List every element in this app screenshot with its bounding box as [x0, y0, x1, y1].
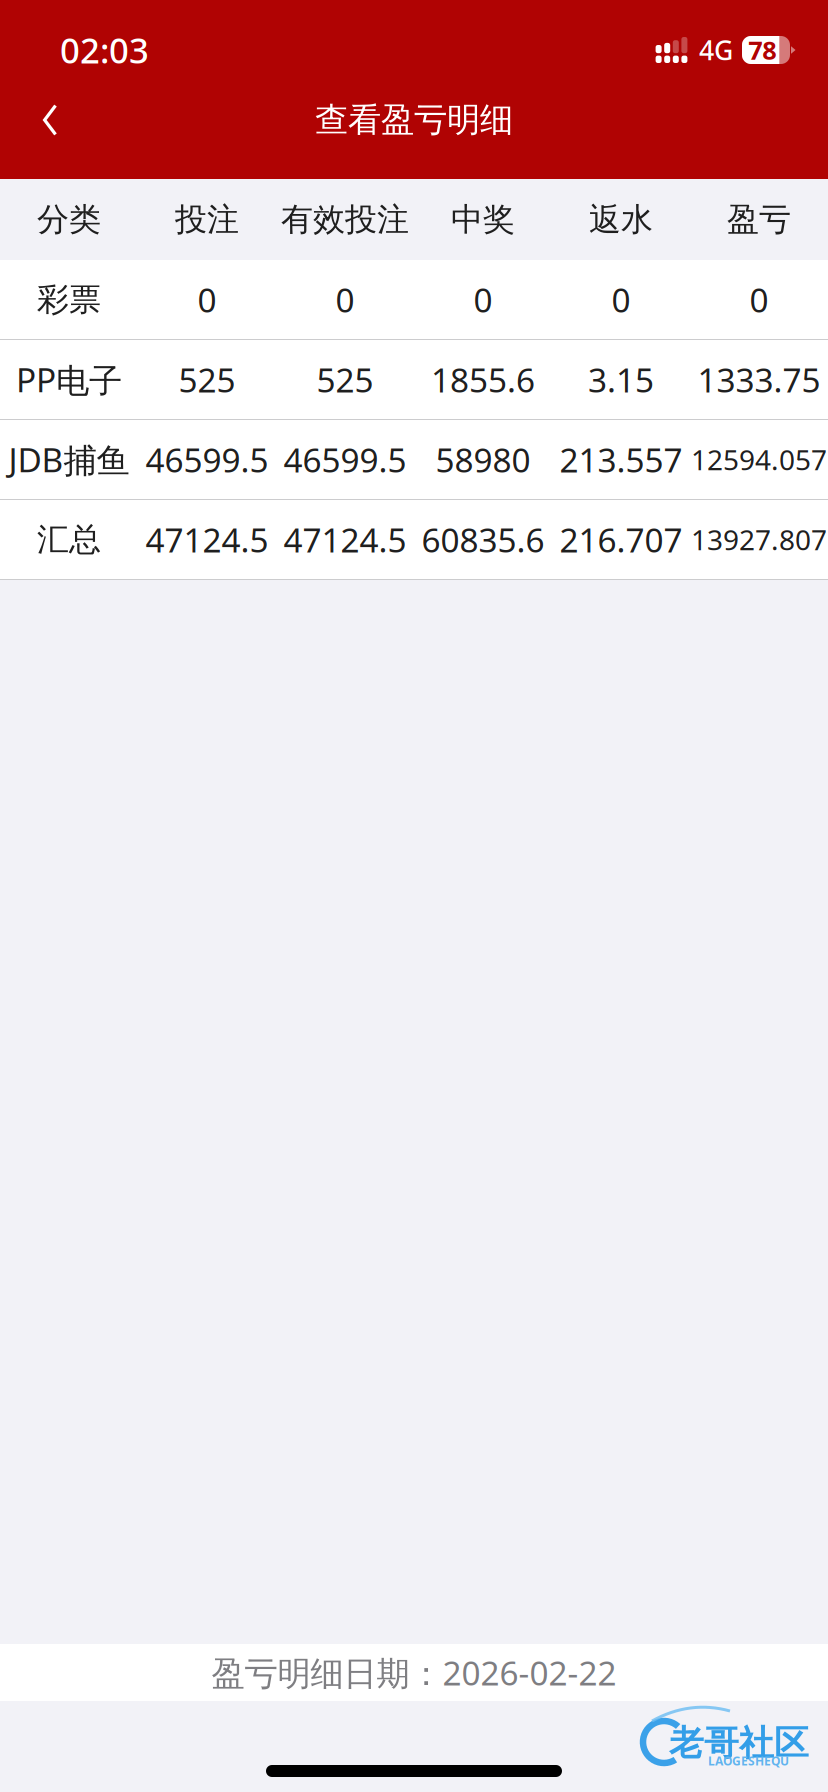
staticText: 返水	[589, 200, 653, 239]
staticText: 0	[197, 277, 216, 322]
staticText: 盈亏明细日期：2026-02-22	[211, 1650, 616, 1695]
staticText: 盈亏	[727, 200, 791, 239]
staticText: 3.15	[588, 357, 654, 402]
staticText: 查看盈亏明细	[315, 99, 513, 140]
staticText: 13927.807	[691, 521, 827, 558]
staticText: 78	[748, 33, 776, 67]
staticText: 4G	[699, 32, 733, 68]
button[interactable]: Back	[0, 79, 120, 161]
staticText: 02:03	[60, 27, 149, 73]
staticText: 58980	[435, 437, 530, 482]
staticText: JDB捕鱼	[8, 437, 129, 482]
staticText: 彩票	[37, 280, 101, 319]
staticText: 老哥社区	[669, 1722, 809, 1765]
staticText: 0	[611, 277, 630, 322]
staticText: 47124.5	[145, 517, 268, 562]
staticText: 47124.5	[283, 517, 406, 562]
staticText: 1855.6	[431, 357, 535, 402]
staticText: 0	[335, 277, 354, 322]
staticText: 分类	[37, 200, 101, 239]
staticText: 213.557	[559, 437, 682, 482]
staticText: LAOGESHEQU	[708, 1753, 789, 1769]
staticText: 0	[473, 277, 492, 322]
staticText: 12594.057	[691, 441, 827, 478]
staticText: 中奖	[451, 200, 515, 239]
staticText: PP电子	[16, 357, 122, 402]
staticText: 46599.5	[145, 437, 268, 482]
staticText: 525	[178, 357, 235, 402]
staticText: 525	[316, 357, 373, 402]
staticText: 有效投注	[281, 200, 409, 239]
staticText: 0	[749, 277, 768, 322]
staticText: 投注	[175, 200, 239, 239]
staticText: 1333.75	[697, 357, 820, 402]
staticText: 汇总	[37, 520, 101, 559]
staticText: 60835.6	[421, 517, 544, 562]
staticText: 216.707	[559, 517, 682, 562]
staticText: 46599.5	[283, 437, 406, 482]
